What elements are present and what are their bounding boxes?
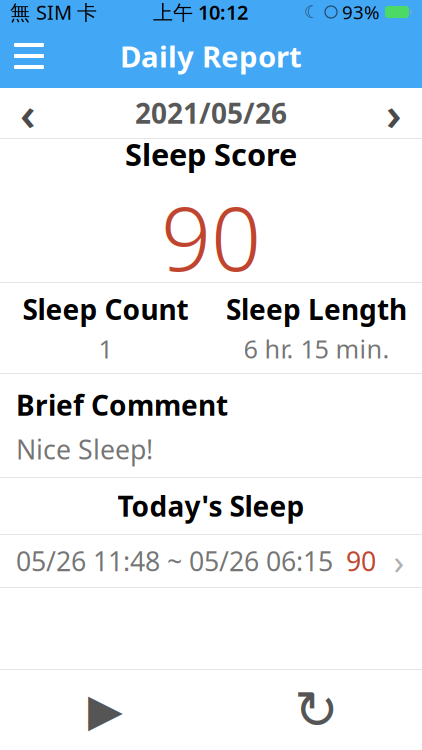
staticText: Nice Sleep!: [16, 431, 153, 467]
button[interactable]: Refresh: [211, 670, 422, 750]
staticText: 無 SIM 卡: [10, 0, 97, 25]
staticText: 90: [161, 178, 261, 295]
staticText: ☾: [304, 2, 320, 22]
button[interactable]: 05/26 11:48 ~ 05/26 06:15: [0, 535, 422, 587]
button[interactable]: Previous day: [0, 88, 56, 138]
staticText: Today's Sleep: [117, 487, 304, 525]
button[interactable]: Next day: [366, 88, 422, 138]
button[interactable]: Menu: [0, 24, 58, 88]
staticText: 上午 10:12: [153, 0, 248, 25]
staticText: 90: [346, 543, 376, 579]
staticText: Sleep Score: [125, 134, 297, 174]
button[interactable]: Play: [0, 670, 211, 750]
staticText: 1: [98, 332, 112, 365]
staticText: Sleep Count: [22, 291, 188, 328]
staticText: ↻: [294, 680, 339, 740]
staticText: 6 hr. 15 min.: [243, 332, 389, 365]
staticText: ‹: [20, 83, 36, 143]
staticText: Sleep Length: [226, 291, 407, 328]
staticText: Daily Report: [120, 36, 302, 75]
staticText: 05/26 11:48 ~ 05/26 06:15: [16, 543, 333, 579]
staticText: 93%: [342, 0, 380, 24]
staticText: ▶: [88, 684, 123, 736]
staticText: Brief Comment: [16, 386, 228, 423]
staticText: ›: [393, 538, 404, 584]
staticText: ›: [386, 83, 402, 143]
staticText: 2021/05/26: [135, 94, 287, 132]
